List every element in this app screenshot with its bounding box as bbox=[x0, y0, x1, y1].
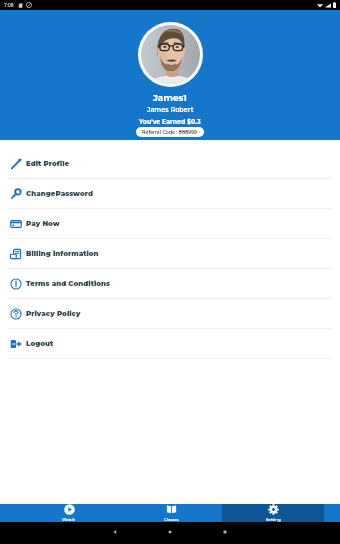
button[interactable]: Classes bbox=[120, 504, 222, 522]
staticText: Billing information bbox=[26, 249, 99, 258]
button[interactable]: Pay Now bbox=[0, 209, 340, 238]
staticText: ChangePassword bbox=[26, 189, 93, 198]
staticText: Setting bbox=[266, 517, 281, 522]
button[interactable]: Billing information bbox=[0, 239, 340, 268]
staticText: Edit Profile bbox=[26, 159, 70, 168]
button[interactable]: Watch bbox=[17, 504, 120, 522]
staticText: Privacy Policy bbox=[26, 309, 81, 318]
button[interactable]: Edit Profile bbox=[0, 149, 340, 178]
staticText: Terms and Conditions bbox=[26, 279, 111, 288]
staticText: 7:08 bbox=[4, 2, 14, 8]
button[interactable]: Setting bbox=[222, 504, 324, 522]
staticText: James Robert bbox=[147, 106, 194, 114]
button[interactable]: Privacy Policy bbox=[0, 299, 340, 328]
button[interactable]: Logout bbox=[0, 329, 340, 358]
button[interactable]: Profile photo bbox=[141, 25, 200, 84]
button[interactable]: ChangePassword bbox=[0, 179, 340, 208]
staticText: Referral Code : 888999 bbox=[142, 129, 198, 135]
staticText: Watch bbox=[62, 517, 76, 522]
other: Back bbox=[112, 529, 118, 535]
staticText: James1 bbox=[153, 92, 187, 103]
staticText: Classes bbox=[164, 517, 179, 522]
staticText: Logout bbox=[26, 339, 54, 348]
staticText: You've Earned $0.3 bbox=[139, 118, 201, 126]
staticText: Pay Now bbox=[26, 219, 60, 228]
button[interactable]: Terms and Conditions bbox=[0, 269, 340, 298]
other: Home bbox=[167, 529, 173, 535]
button[interactable]: Referral Code : 888999 bbox=[136, 127, 204, 137]
other: Recents bbox=[222, 529, 228, 535]
